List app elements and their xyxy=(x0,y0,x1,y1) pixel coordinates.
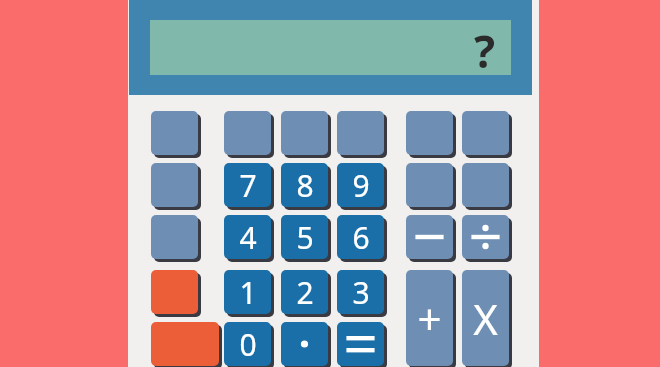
staticText: 6 xyxy=(352,217,370,258)
staticText: 3 xyxy=(352,272,370,313)
button[interactable]: Multiply xyxy=(462,270,509,366)
button[interactable]: Function key xyxy=(337,111,384,155)
button[interactable]: Minus xyxy=(406,215,453,259)
button[interactable]: Function key xyxy=(224,111,271,155)
staticText: 7 xyxy=(239,165,257,206)
button[interactable]: Function key xyxy=(462,163,509,207)
button[interactable]: Divide xyxy=(462,215,509,259)
staticText: 9 xyxy=(352,165,370,206)
staticText: 5 xyxy=(296,217,314,258)
button[interactable]: 1 xyxy=(224,270,271,314)
staticText: X xyxy=(473,290,498,347)
staticText: 8 xyxy=(296,165,314,206)
button[interactable]: Function key xyxy=(151,111,198,155)
button[interactable]: 5 xyxy=(281,215,328,259)
staticText: 0 xyxy=(239,324,257,365)
button[interactable]: 9 xyxy=(337,163,384,207)
button[interactable]: Function key xyxy=(281,111,328,155)
button[interactable]: 0 xyxy=(224,322,271,366)
button[interactable]: Function key xyxy=(151,163,198,207)
button[interactable]: 6 xyxy=(337,215,384,259)
staticText: 4 xyxy=(239,217,257,258)
button[interactable]: Plus xyxy=(406,270,453,366)
button[interactable]: Equals xyxy=(337,322,384,366)
button[interactable]: Function key xyxy=(406,111,453,155)
button[interactable]: Clear xyxy=(151,270,198,314)
button[interactable]: Function key xyxy=(462,111,509,155)
button[interactable]: Function key xyxy=(151,215,198,259)
button[interactable]: 4 xyxy=(224,215,271,259)
button[interactable]: Clear entry xyxy=(151,322,219,366)
button[interactable]: Decimal point xyxy=(281,322,328,366)
staticText: ? xyxy=(474,21,495,76)
button[interactable]: 8 xyxy=(281,163,328,207)
button[interactable]: 2 xyxy=(281,270,328,314)
button[interactable]: Function key xyxy=(406,163,453,207)
button[interactable]: 3 xyxy=(337,270,384,314)
staticText: 2 xyxy=(296,272,314,313)
staticText: + xyxy=(417,290,442,347)
staticText: 1 xyxy=(239,272,257,313)
button[interactable]: 7 xyxy=(224,163,271,207)
